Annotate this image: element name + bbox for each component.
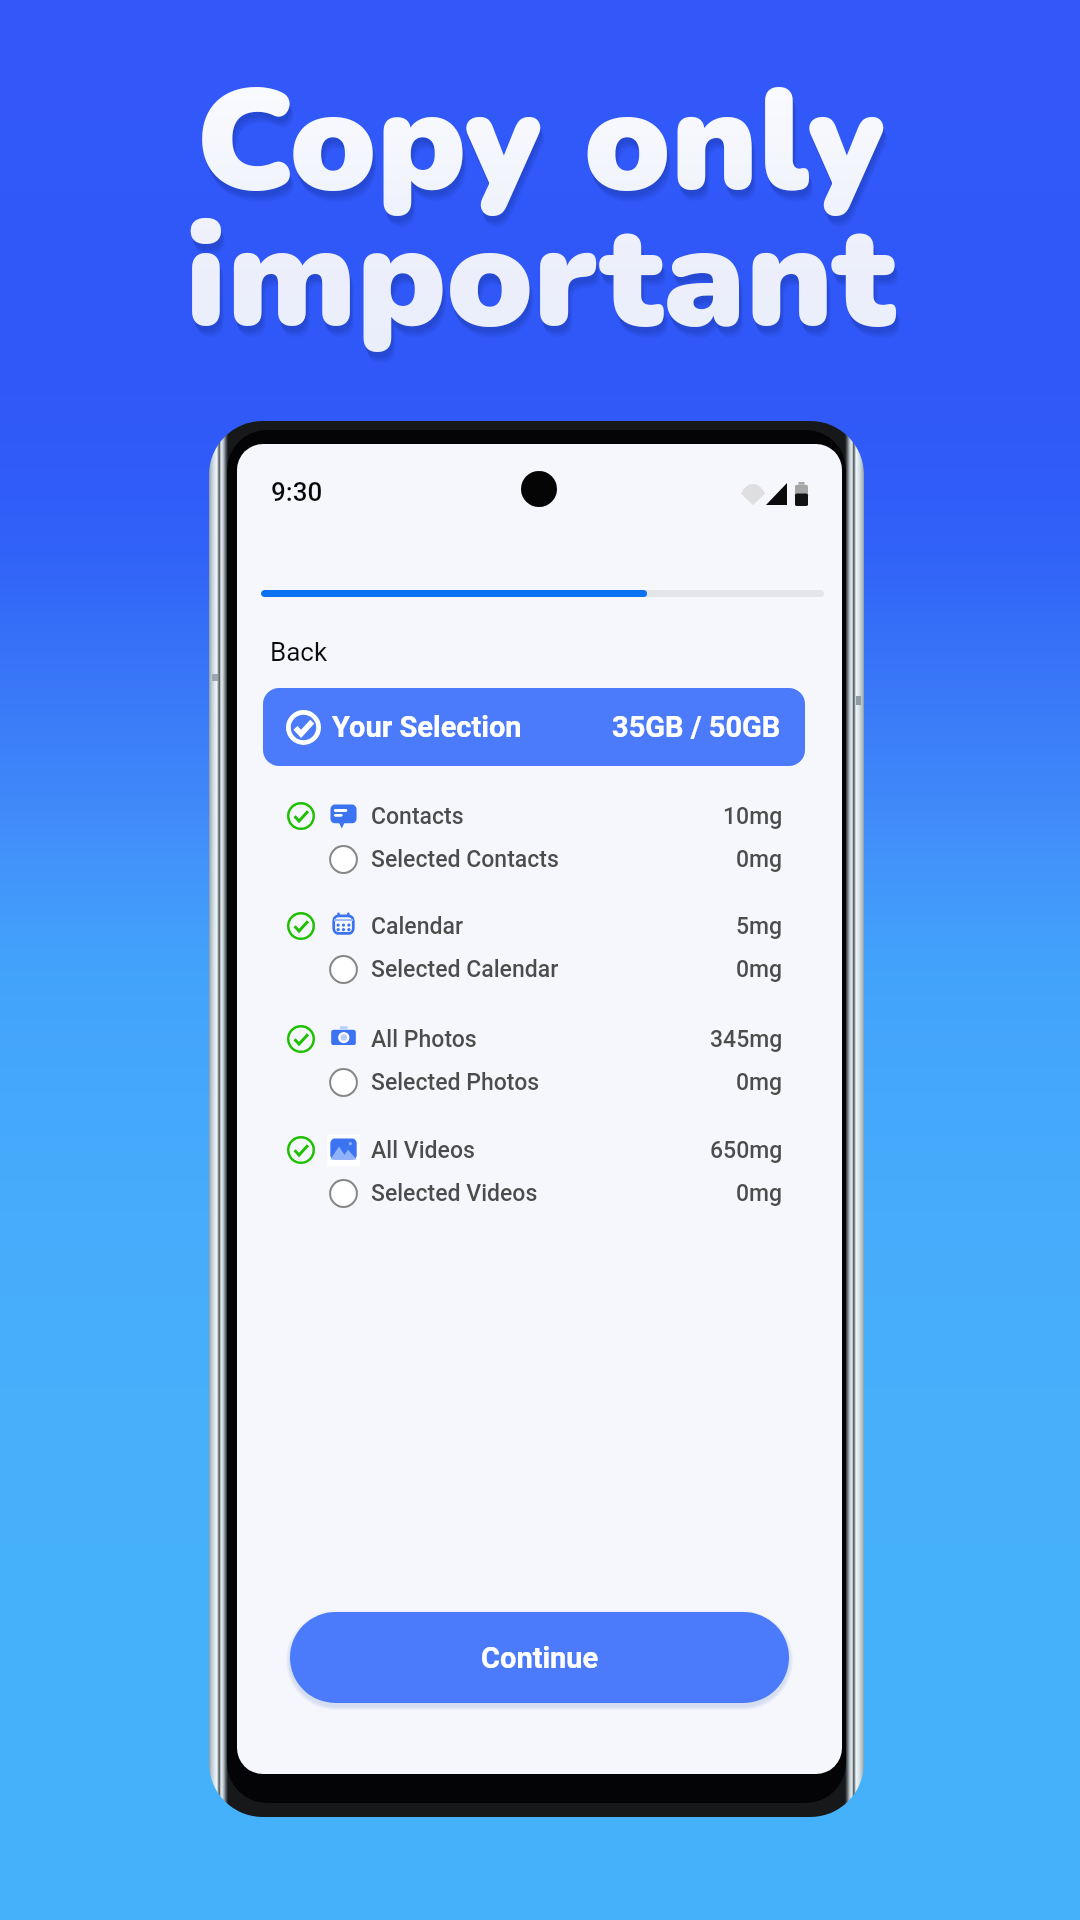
button[interactable]: All Videos xyxy=(277,1128,789,1172)
staticText: 345mg xyxy=(710,1026,783,1053)
staticText: All Photos xyxy=(371,1026,477,1053)
staticText: 10mg xyxy=(723,803,783,830)
staticText: 5mg xyxy=(736,913,783,940)
button[interactable]: Selected Contacts xyxy=(277,837,789,881)
staticText: 650mg xyxy=(710,1137,783,1164)
staticText: 0mg xyxy=(736,846,783,873)
button[interactable]: Contacts xyxy=(277,794,789,838)
button[interactable]: Continue xyxy=(290,1612,789,1703)
staticText: 9:30 xyxy=(271,477,323,507)
staticText: Selected Videos xyxy=(371,1180,538,1207)
staticText: 35GB / 50GB xyxy=(612,710,781,744)
staticText: Back xyxy=(270,637,328,667)
button[interactable]: Selected Photos xyxy=(277,1060,789,1104)
staticText: Selected Calendar xyxy=(371,956,559,983)
staticText: Contacts xyxy=(371,803,464,830)
button[interactable]: Back xyxy=(258,629,340,675)
button[interactable]: Calendar xyxy=(277,904,789,948)
staticText: Selected Contacts xyxy=(371,846,559,873)
staticText: All Videos xyxy=(371,1137,475,1164)
button[interactable]: Selected Videos xyxy=(277,1171,789,1215)
staticText: 0mg xyxy=(736,956,783,983)
button[interactable]: Your Selection xyxy=(263,688,805,766)
staticText: Calendar xyxy=(371,913,464,940)
staticText: Copy only important xyxy=(185,44,896,375)
staticText: Selected Photos xyxy=(371,1069,540,1096)
button[interactable]: All Photos xyxy=(277,1017,789,1061)
staticText: Copy only important xyxy=(189,55,900,386)
staticText: Continue xyxy=(481,1641,599,1675)
staticText: Copy only important xyxy=(187,51,898,382)
button[interactable]: Selected Calendar xyxy=(277,947,789,991)
staticText: 0mg xyxy=(736,1069,783,1096)
staticText: Copy only important xyxy=(186,49,897,380)
staticText: Your Selection xyxy=(332,710,522,744)
staticText: 0mg xyxy=(736,1180,783,1207)
staticText: Copy only important xyxy=(188,53,899,384)
